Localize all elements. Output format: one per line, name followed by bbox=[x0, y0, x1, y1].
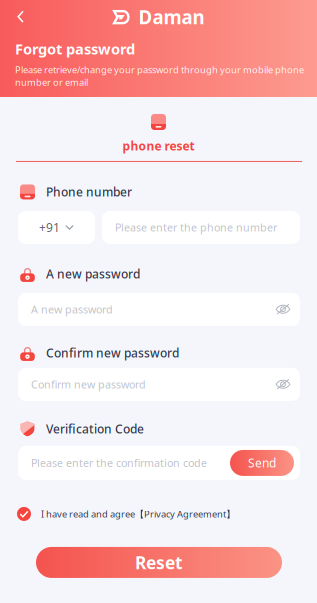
button[interactable]: Show password bbox=[270, 294, 296, 324]
staticText: Phone number bbox=[46, 184, 132, 200]
staticText: Confirm new password bbox=[46, 345, 179, 361]
button[interactable]: I have read and agree【Privacy Agreement】 bbox=[0, 505, 317, 523]
staticText: A new password bbox=[31, 302, 113, 317]
staticText: Send bbox=[248, 455, 276, 471]
button[interactable]: Reset bbox=[0, 547, 317, 578]
button[interactable]: phone reset bbox=[0, 97, 317, 154]
staticText: Reset bbox=[135, 551, 183, 574]
staticText: I have read and agree【Privacy Agreement】 bbox=[41, 508, 235, 520]
button[interactable]: Country code, +91 bbox=[18, 211, 95, 244]
button[interactable]: Send bbox=[230, 450, 294, 476]
staticText: +91 bbox=[39, 219, 60, 235]
button[interactable]: Show password bbox=[270, 369, 296, 399]
button[interactable]: Back bbox=[0, 3, 36, 31]
staticText: Daman bbox=[138, 5, 204, 29]
staticText: Please enter the confirmation code bbox=[31, 456, 207, 470]
staticText: A new password bbox=[46, 266, 140, 282]
staticText: phone reset bbox=[122, 138, 194, 154]
staticText: Please retrieve/change your password thr… bbox=[15, 63, 304, 88]
staticText: Please enter the phone number bbox=[115, 220, 277, 235]
staticText: Confirm new password bbox=[31, 377, 146, 392]
staticText: Verification Code bbox=[46, 421, 144, 437]
staticText: Forgot password bbox=[15, 39, 135, 58]
